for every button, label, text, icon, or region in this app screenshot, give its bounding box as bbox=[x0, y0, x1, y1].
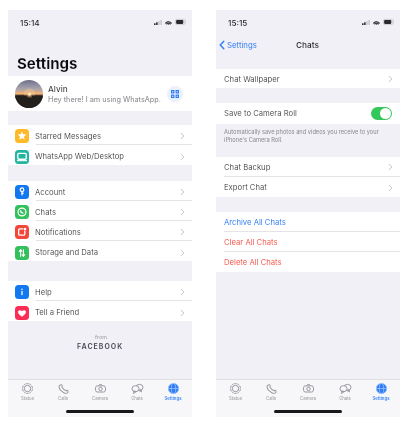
staticText: Help bbox=[35, 288, 52, 297]
staticText: Hey there! I am using WhatsApp. bbox=[48, 95, 161, 104]
button[interactable]: Chats bbox=[8, 201, 192, 221]
staticText: Account bbox=[35, 188, 66, 197]
button[interactable]: WhatsApp Web/Desktop bbox=[8, 145, 192, 165]
button[interactable]: Storage and Data bbox=[8, 241, 192, 261]
button[interactable]: Status bbox=[217, 380, 253, 401]
staticText: Settings bbox=[17, 54, 78, 72]
staticText: Chats bbox=[339, 396, 351, 401]
button[interactable]: Settings bbox=[155, 380, 191, 401]
staticText: 15:15 bbox=[228, 18, 248, 28]
button[interactable]: QR code bbox=[167, 86, 183, 102]
staticText: Calls bbox=[58, 396, 68, 401]
staticText: Chats bbox=[131, 396, 143, 401]
staticText: Calls bbox=[266, 396, 276, 401]
staticText: Starred Messages bbox=[35, 132, 102, 141]
staticText: Notifications bbox=[35, 228, 81, 237]
staticText: Status bbox=[21, 396, 34, 401]
staticText: Automatically save photos and videos you… bbox=[224, 128, 380, 143]
staticText: Status bbox=[229, 396, 242, 401]
button[interactable]: Camera bbox=[82, 380, 118, 401]
staticText: FACEBOOK bbox=[77, 342, 124, 350]
staticText: Settings bbox=[372, 396, 390, 401]
staticText: Tell a Friend bbox=[35, 308, 80, 317]
staticText: Delete All Chats bbox=[224, 258, 282, 267]
staticText: WhatsApp Web/Desktop bbox=[35, 152, 125, 161]
button[interactable]: Status bbox=[9, 380, 45, 401]
button[interactable]: Settings bbox=[363, 380, 399, 401]
staticText: from bbox=[95, 334, 107, 341]
button[interactable]: Chats bbox=[327, 380, 363, 401]
button[interactable]: Save to Camera Roll bbox=[216, 103, 400, 124]
button[interactable]: Calls bbox=[253, 380, 289, 401]
button[interactable]: Alvin bbox=[8, 76, 192, 111]
button[interactable]: Account bbox=[8, 181, 192, 201]
button[interactable]: Settings bbox=[216, 37, 263, 52]
button[interactable]: Archive All Chats bbox=[216, 212, 400, 232]
button[interactable]: Help bbox=[8, 281, 192, 301]
staticText: Export Chat bbox=[224, 183, 267, 192]
button[interactable]: Export Chat bbox=[216, 177, 400, 197]
button[interactable]: Notifications bbox=[8, 221, 192, 241]
button[interactable]: Tell a Friend bbox=[8, 301, 192, 321]
staticText: Chat Wallpaper bbox=[224, 75, 280, 84]
button[interactable]: Chat Backup bbox=[216, 157, 400, 177]
staticText: Camera bbox=[300, 396, 316, 401]
button[interactable]: Camera bbox=[290, 380, 326, 401]
staticText: Alvin bbox=[48, 84, 68, 94]
staticText: Chats bbox=[35, 208, 56, 217]
button[interactable]: Chat Wallpaper bbox=[216, 69, 400, 88]
button[interactable]: Calls bbox=[45, 380, 81, 401]
button[interactable]: Starred Messages bbox=[8, 125, 192, 145]
staticText: Settings bbox=[164, 396, 182, 401]
staticText: Chat Backup bbox=[224, 163, 271, 172]
button[interactable]: Delete All Chats bbox=[216, 252, 400, 272]
staticText: Camera bbox=[92, 396, 108, 401]
staticText: Chats bbox=[296, 40, 320, 50]
staticText: Storage and Data bbox=[35, 248, 99, 257]
staticText: Clear All Chats bbox=[224, 238, 278, 247]
staticText: 15:14 bbox=[20, 18, 40, 28]
button[interactable]: Clear All Chats bbox=[216, 232, 400, 252]
button[interactable]: Chats bbox=[119, 380, 155, 401]
staticText: Archive All Chats bbox=[224, 218, 286, 227]
staticText: Settings bbox=[227, 40, 257, 49]
staticText: Save to Camera Roll bbox=[224, 109, 297, 118]
